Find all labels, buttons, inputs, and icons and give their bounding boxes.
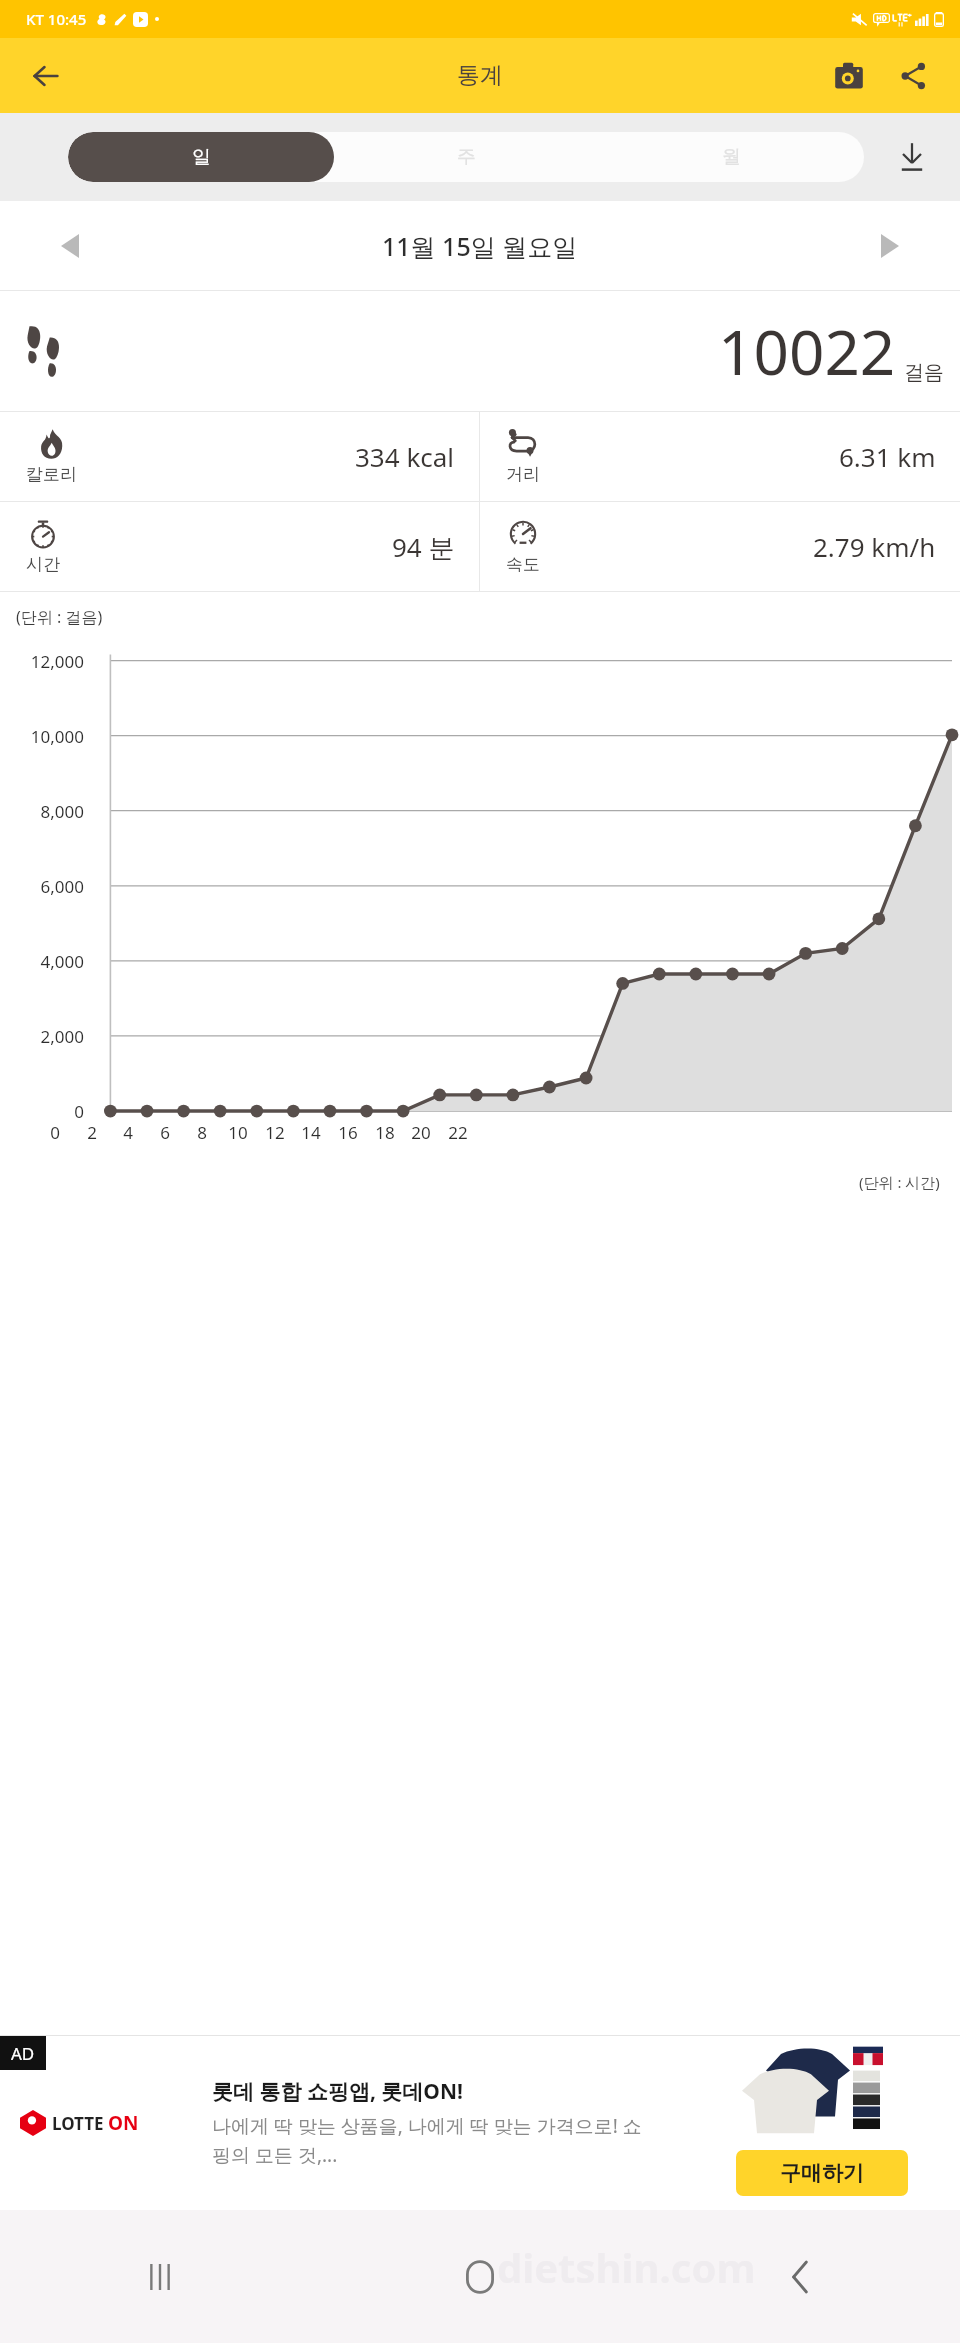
staticText: 4,000: [0, 950, 84, 973]
staticText: 8: [190, 1121, 214, 1144]
staticText: 구매하기: [780, 2160, 864, 2186]
staticText: 통계: [457, 61, 503, 90]
staticText: LOTTE: [52, 2112, 104, 2135]
staticText: 걸음: [904, 360, 944, 385]
staticText: 2,000: [0, 1025, 84, 1048]
staticText: (단위 : 시간): [859, 1172, 940, 1192]
staticText: 나에게 딱 맞는 상품을, 나에게 딱 맞는 가격으로! 쇼핑의 모든 것,..…: [212, 2113, 660, 2168]
staticText: 6,000: [0, 875, 84, 898]
staticText: 10: [226, 1121, 250, 1144]
staticText: 10,000: [0, 725, 84, 748]
staticText: 14: [299, 1121, 323, 1144]
button[interactable]: Share: [886, 49, 940, 103]
staticText: 0: [0, 1100, 84, 1123]
staticText: 거리: [506, 464, 540, 485]
staticText: 시간: [26, 554, 60, 575]
staticText: 롯데 통합 쇼핑앱, 롯데ON!: [212, 2077, 463, 2106]
button[interactable]: Back: [18, 48, 74, 104]
button[interactable]: Recents: [0, 2210, 320, 2343]
staticText: AD: [11, 2042, 35, 2065]
staticText: 2: [80, 1121, 104, 1144]
staticText: 8,000: [0, 800, 84, 823]
button[interactable]: Camera: [822, 49, 876, 103]
staticText: 12,000: [0, 650, 84, 673]
button[interactable]: 구매하기: [736, 2150, 908, 2196]
button[interactable]: Next day: [864, 220, 916, 272]
staticText: 22: [446, 1121, 470, 1144]
staticText: 0: [43, 1121, 67, 1144]
staticText: 6.31 km: [839, 439, 936, 474]
staticText: 일: [192, 145, 211, 169]
staticText: 칼로리: [26, 464, 77, 485]
staticText: 20: [409, 1121, 433, 1144]
button[interactable]: 속도: [480, 502, 960, 591]
staticText: 2.79 km/h: [813, 529, 936, 564]
staticText: 속도: [506, 554, 540, 575]
button[interactable]: 시간: [0, 502, 479, 591]
staticText: 월: [722, 145, 741, 169]
staticText: KT 10:45: [26, 9, 87, 29]
button[interactable]: Previous day: [44, 220, 96, 272]
button[interactable]: 월: [599, 132, 864, 182]
button[interactable]: Back: [640, 2210, 960, 2343]
staticText: ON: [108, 2110, 139, 2136]
button[interactable]: Download: [886, 131, 938, 183]
staticText: 10022: [718, 309, 896, 393]
button[interactable]: AD: [0, 2035, 960, 2210]
button[interactable]: 거리: [480, 412, 960, 501]
staticText: 334 kcal: [355, 439, 455, 474]
staticText: 주: [457, 145, 476, 169]
staticText: 6: [153, 1121, 177, 1144]
button[interactable]: 칼로리: [0, 412, 479, 501]
button[interactable]: Home: [320, 2210, 640, 2343]
button[interactable]: 일: [68, 132, 334, 182]
staticText: 94 분: [392, 529, 455, 565]
staticText: 11월 15일 월요일: [382, 229, 578, 263]
staticText: 12: [263, 1121, 287, 1144]
staticText: 16: [336, 1121, 360, 1144]
staticText: 18: [373, 1121, 397, 1144]
staticText: (단위 : 걸음): [16, 606, 103, 628]
staticText: dietshin.com: [497, 2240, 756, 2294]
staticText: 4: [116, 1121, 140, 1144]
